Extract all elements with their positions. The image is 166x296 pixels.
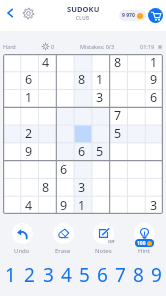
button[interactable]	[91, 196, 109, 214]
button[interactable]: 9	[55, 196, 73, 214]
button[interactable]	[73, 106, 91, 124]
button[interactable]	[3, 124, 20, 142]
button[interactable]	[37, 196, 55, 214]
button[interactable]: 3	[91, 88, 109, 106]
button[interactable]: 1	[145, 54, 163, 71]
button[interactable]: 6	[20, 71, 37, 88]
button[interactable]	[73, 160, 91, 178]
button[interactable]: 5	[75, 262, 93, 286]
button[interactable]: Settings	[21, 6, 35, 20]
button[interactable]: 9	[20, 142, 37, 160]
button[interactable]	[127, 54, 145, 71]
button[interactable]	[20, 160, 37, 178]
button[interactable]: 2	[20, 262, 39, 286]
button[interactable]	[127, 178, 145, 196]
button[interactable]	[73, 54, 91, 71]
button[interactable]: 3	[145, 196, 163, 214]
button[interactable]: 4	[20, 196, 37, 214]
staticText: 9	[151, 262, 162, 286]
button[interactable]	[37, 71, 55, 88]
button[interactable]	[109, 160, 127, 178]
button[interactable]	[55, 54, 73, 71]
button[interactable]	[109, 178, 127, 196]
button[interactable]	[3, 54, 20, 71]
button[interactable]	[37, 160, 55, 178]
button[interactable]: 8	[73, 71, 91, 88]
button[interactable]: 1	[1, 262, 20, 286]
button[interactable]: 7	[109, 106, 127, 124]
button[interactable]	[37, 124, 55, 142]
button[interactable]	[127, 124, 145, 142]
button[interactable]	[73, 88, 91, 106]
button[interactable]: 6	[145, 88, 163, 106]
button[interactable]: 4	[57, 262, 75, 286]
button[interactable]: Erase	[46, 223, 80, 255]
button[interactable]	[109, 88, 127, 106]
button[interactable]: 1	[91, 71, 109, 88]
button[interactable]	[37, 142, 55, 160]
button[interactable]: 100	[127, 223, 161, 255]
button[interactable]: Off	[86, 223, 120, 255]
button[interactable]	[3, 178, 20, 196]
button[interactable]: 8	[129, 262, 147, 286]
button[interactable]: 6	[55, 160, 73, 178]
button[interactable]	[145, 178, 163, 196]
button[interactable]: 9	[147, 262, 165, 286]
button[interactable]	[109, 196, 127, 214]
button[interactable]: Undo	[5, 223, 39, 255]
button[interactable]	[73, 124, 91, 142]
button[interactable]	[20, 178, 37, 196]
button[interactable]	[127, 142, 145, 160]
button[interactable]: 4	[37, 54, 55, 71]
button[interactable]	[3, 142, 20, 160]
button[interactable]	[37, 106, 55, 124]
button[interactable]: 5	[109, 124, 127, 142]
button[interactable]	[55, 124, 73, 142]
button[interactable]	[145, 142, 163, 160]
button[interactable]	[3, 88, 20, 106]
button[interactable]	[127, 88, 145, 106]
button[interactable]	[55, 88, 73, 106]
button[interactable]	[127, 196, 145, 214]
button[interactable]	[109, 142, 127, 160]
button[interactable]	[55, 106, 73, 124]
button[interactable]: 8	[37, 178, 55, 196]
button[interactable]: 1	[20, 88, 37, 106]
button[interactable]	[91, 124, 109, 142]
button[interactable]: 8	[109, 54, 127, 71]
button[interactable]	[145, 160, 163, 178]
button[interactable]	[91, 106, 109, 124]
button[interactable]	[37, 88, 55, 106]
button[interactable]: 9 970	[119, 10, 146, 21]
button[interactable]: 7	[111, 262, 129, 286]
button[interactable]	[20, 106, 37, 124]
button[interactable]: Pause	[157, 44, 163, 50]
button[interactable]: 6	[93, 262, 111, 286]
button[interactable]: 3	[73, 178, 91, 196]
button[interactable]	[55, 178, 73, 196]
button[interactable]	[127, 160, 145, 178]
button[interactable]: 2	[20, 124, 37, 142]
button[interactable]: 3	[39, 262, 57, 286]
button[interactable]	[127, 71, 145, 88]
button[interactable]	[127, 106, 145, 124]
button[interactable]	[3, 160, 20, 178]
button[interactable]	[55, 71, 73, 88]
button[interactable]	[145, 124, 163, 142]
button[interactable]	[3, 196, 20, 214]
button[interactable]	[20, 54, 37, 71]
button[interactable]: Back	[3, 6, 17, 20]
button[interactable]: 5	[91, 142, 109, 160]
button[interactable]	[55, 142, 73, 160]
button[interactable]: 1	[73, 196, 91, 214]
button[interactable]	[145, 106, 163, 124]
button[interactable]	[3, 71, 20, 88]
button[interactable]	[91, 178, 109, 196]
button[interactable]	[3, 106, 20, 124]
button[interactable]	[91, 160, 109, 178]
button[interactable]	[91, 54, 109, 71]
button[interactable]: 9	[145, 71, 163, 88]
button[interactable]	[109, 71, 127, 88]
button[interactable]: Shop	[148, 8, 163, 23]
button[interactable]: 6	[73, 142, 91, 160]
